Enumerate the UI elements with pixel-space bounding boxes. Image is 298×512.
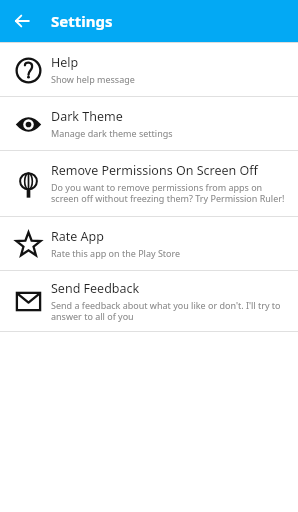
staticText: Manage dark theme settings xyxy=(51,127,173,139)
staticText: Dark Theme xyxy=(51,108,123,125)
staticText: Send Feedback xyxy=(51,280,140,297)
staticText: Do you want to remove permissions from a… xyxy=(51,181,290,205)
staticText: Settings xyxy=(51,11,113,31)
staticText: Show help message xyxy=(51,73,135,85)
staticText: Send a feedback about what you like or d… xyxy=(51,299,290,323)
staticText: Rate App xyxy=(51,228,104,245)
button[interactable]: Send Feedback xyxy=(0,271,298,331)
button[interactable]: Remove permissions on screen off xyxy=(0,151,298,216)
staticText: Rate this app on the Play Store xyxy=(51,247,181,259)
staticText: Help xyxy=(51,54,79,71)
staticText: Remove Permissions On Screen Off xyxy=(51,162,258,179)
button[interactable]: Dark Theme xyxy=(0,97,298,150)
button[interactable]: Rate App xyxy=(0,217,298,270)
button[interactable]: Help xyxy=(0,43,298,96)
button[interactable]: Back xyxy=(8,7,36,35)
